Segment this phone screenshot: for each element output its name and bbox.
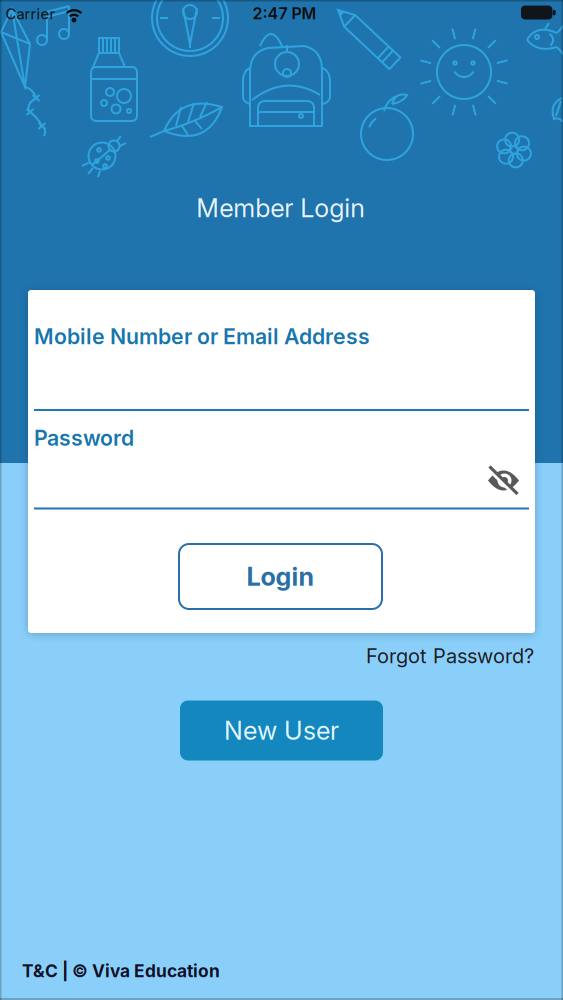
staticText: Member Login xyxy=(196,193,365,223)
button[interactable]: T&C | © Viva Education xyxy=(22,961,220,981)
staticText: 2:47 PM xyxy=(252,4,316,23)
staticText: New User xyxy=(224,716,339,745)
staticText: Carrier xyxy=(5,5,55,23)
staticText: Login xyxy=(246,562,314,591)
staticText: Mobile Number or Email Address xyxy=(34,324,370,349)
staticText: T&C | © Viva Education xyxy=(22,961,220,981)
button[interactable]: Password xyxy=(34,425,529,509)
button[interactable]: New User xyxy=(180,700,383,760)
staticText: Password xyxy=(34,425,134,451)
button[interactable]: Login xyxy=(179,544,382,609)
staticText: Forgot Password? xyxy=(366,644,534,668)
button[interactable]: Forgot Password? xyxy=(366,644,534,668)
button[interactable]: Mobile Number or Email Address xyxy=(34,319,529,411)
button[interactable]: Show password xyxy=(481,460,525,500)
